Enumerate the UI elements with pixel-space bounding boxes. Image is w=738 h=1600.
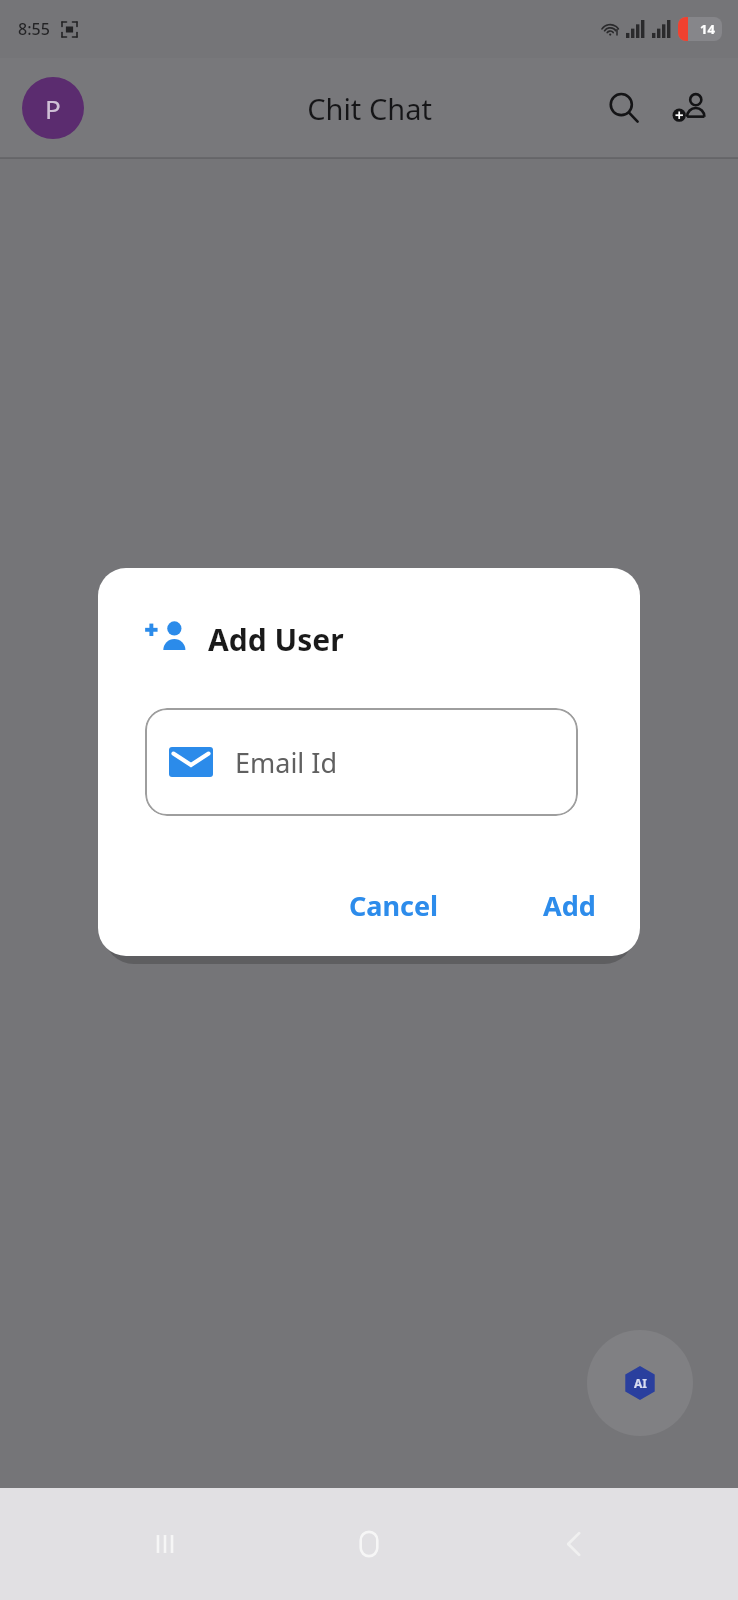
button[interactable]: Add	[529, 875, 610, 936]
button[interactable]: Search	[598, 82, 650, 134]
button[interactable]: Add user	[664, 82, 716, 134]
staticText: 8:55	[18, 18, 50, 40]
button[interactable]: AI assistant	[587, 1330, 693, 1436]
button[interactable]: Home	[329, 1504, 409, 1584]
staticText: AI	[634, 1375, 647, 1391]
staticText: P	[45, 91, 61, 126]
button[interactable]: Cancel	[335, 875, 453, 936]
staticText: 14	[700, 20, 715, 38]
staticText: Add User	[208, 619, 344, 660]
staticText: Email Id	[235, 744, 338, 781]
staticText: Chit Chat	[307, 89, 432, 128]
staticText: Add	[543, 887, 596, 924]
button[interactable]: Profile	[22, 77, 84, 139]
button[interactable]: Email Id	[145, 708, 578, 816]
staticText: Cancel	[349, 887, 439, 924]
